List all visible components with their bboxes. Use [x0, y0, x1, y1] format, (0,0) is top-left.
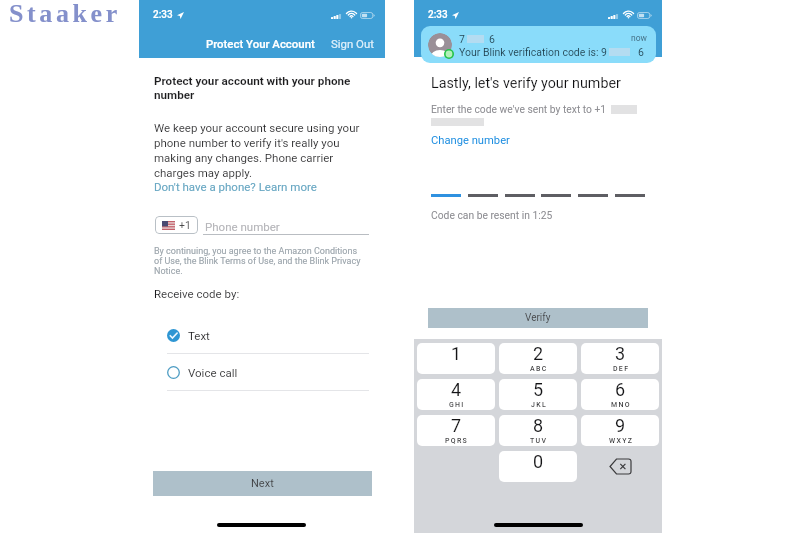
- button[interactable]: Protect Your Account: [206, 37, 315, 50]
- staticText: JKL: [531, 401, 547, 409]
- staticText: By continuing, you agree to the Amazon C…: [154, 246, 364, 276]
- staticText: GHI: [449, 401, 465, 409]
- button[interactable]: 5: [499, 379, 577, 410]
- button[interactable]: Don't have a phone? Learn more: [154, 180, 317, 193]
- button[interactable]: 4: [417, 379, 495, 410]
- staticText: 2:33: [428, 9, 448, 21]
- button[interactable]: 6: [581, 379, 659, 410]
- staticText: Voice call: [188, 366, 238, 379]
- staticText: 1: [451, 343, 462, 364]
- staticText: Code can be resent in 1:25: [431, 209, 553, 221]
- staticText: 9: [615, 415, 626, 436]
- staticText: 3: [615, 343, 626, 364]
- button[interactable]: 9: [581, 415, 659, 446]
- staticText: TUV: [530, 437, 548, 445]
- staticText: 7: [451, 415, 462, 436]
- staticText: Text: [188, 329, 210, 342]
- button[interactable]: Verify: [428, 308, 648, 328]
- staticText: 5: [533, 379, 544, 400]
- staticText: Change number: [431, 134, 510, 147]
- staticText: 4: [451, 379, 462, 400]
- staticText: 0: [533, 451, 544, 472]
- staticText: Enter the code we've sent by text to +1: [431, 103, 607, 115]
- staticText: Sign Out: [331, 37, 374, 50]
- staticText: Phone number: [205, 220, 280, 233]
- staticText: MNO: [611, 401, 631, 409]
- staticText: ABC: [530, 365, 548, 373]
- staticText: Next: [251, 477, 274, 490]
- button[interactable]: 7: [417, 415, 495, 446]
- staticText: Lastly, let's verify your number: [431, 75, 621, 92]
- button[interactable]: 8: [499, 415, 577, 446]
- staticText: Verify: [525, 312, 551, 324]
- staticText: 8: [533, 415, 544, 436]
- button[interactable]: Change number: [431, 134, 510, 147]
- button[interactable]: Text: [167, 323, 369, 354]
- staticText: We keep your account secure using your p…: [154, 121, 369, 180]
- button[interactable]: 7: [421, 26, 656, 63]
- staticText: Receive code by:: [154, 287, 240, 300]
- staticText: 2: [533, 343, 544, 364]
- staticText: 6: [489, 33, 495, 45]
- button[interactable]: +1: [155, 216, 198, 234]
- staticText: +1: [179, 219, 191, 231]
- button[interactable]: Next: [153, 471, 372, 496]
- staticText: PQRS: [445, 437, 469, 445]
- staticText: Protect Your Account: [206, 37, 315, 50]
- button[interactable]: 1: [417, 343, 495, 374]
- button[interactable]: 3: [581, 343, 659, 374]
- staticText: Staaker: [9, 0, 121, 28]
- button[interactable]: Delete: [581, 451, 659, 482]
- staticText: WXYZ: [609, 437, 634, 445]
- staticText: Don't have a phone? Learn more: [154, 180, 317, 193]
- button[interactable]: 2: [499, 343, 577, 374]
- staticText: now: [631, 33, 647, 43]
- staticText: Protect your account with your phone num…: [154, 74, 369, 102]
- staticText: Your Blink verification code is: 9: [459, 46, 607, 58]
- staticText: 2:33: [153, 9, 173, 21]
- button[interactable]: Voice call: [167, 360, 369, 391]
- button[interactable]: 0: [499, 451, 577, 482]
- button[interactable]: Sign Out: [331, 37, 374, 50]
- staticText: 7: [459, 33, 465, 45]
- staticText: DEF: [613, 365, 630, 373]
- staticText: 6: [638, 46, 644, 58]
- staticText: 6: [615, 379, 626, 400]
